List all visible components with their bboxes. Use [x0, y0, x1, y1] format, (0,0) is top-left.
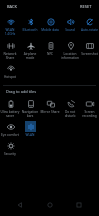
- staticText: Network Share: [0, 52, 20, 60]
- button[interactable]: Mobile data: [40, 15, 60, 33]
- staticText: recording: [80, 114, 99, 118]
- button[interactable]: Auto-rotate: [80, 15, 99, 33]
- staticText: Location: [60, 52, 80, 56]
- staticText: Screenshot: [80, 52, 99, 56]
- staticText: 1.4GHz: [0, 32, 20, 36]
- staticText: Mobile data: [40, 28, 60, 32]
- staticText: Security: [0, 152, 20, 156]
- staticText: saver: [0, 114, 20, 118]
- button[interactable]: RESET: [78, 2, 94, 11]
- staticText: Hotspot: [0, 75, 20, 79]
- button[interactable]: Mirror Share: [40, 97, 60, 115]
- button[interactable]: Navigation: [20, 97, 40, 119]
- staticText: WLAN: [0, 28, 20, 32]
- staticText: Drag to add tiles: [6, 89, 37, 94]
- staticText: bars: [20, 114, 40, 118]
- button[interactable]: BACK: [5, 2, 20, 11]
- staticText: Sound: [60, 28, 80, 32]
- button[interactable]: Hotspot: [0, 62, 20, 80]
- staticText: Mirror Share: [40, 110, 60, 114]
- staticText: Navigation: [20, 110, 40, 114]
- button[interactable]: Security: [0, 139, 20, 157]
- button[interactable]: Back: [11, 196, 29, 214]
- button[interactable]: Network Share: [0, 39, 20, 61]
- button[interactable]: WLAN: [0, 15, 20, 37]
- button[interactable]: Ultra battery: [0, 97, 20, 119]
- button[interactable]: Screenshot: [80, 39, 99, 57]
- staticText: Airplane mode: [20, 52, 40, 60]
- staticText: Bluetooth: [20, 28, 40, 32]
- button[interactable]: NFC: [40, 39, 60, 57]
- button[interactable]: Bluetooth: [20, 15, 40, 33]
- button[interactable]: Airplane mode: [20, 39, 40, 61]
- button[interactable]: Sound: [60, 15, 80, 33]
- button[interactable]: Location: [60, 39, 80, 61]
- button[interactable]: Recents: [70, 196, 88, 214]
- button[interactable]: WLAN: [20, 120, 40, 138]
- staticText: Screen: [80, 110, 99, 114]
- staticText: information: [60, 56, 80, 60]
- staticText: Auto-rotate: [80, 28, 99, 32]
- staticText: Eye comfort: [0, 133, 20, 137]
- staticText: WLAN: [20, 133, 40, 137]
- staticText: BACK: [7, 4, 18, 9]
- button[interactable]: Eye comfort: [0, 120, 20, 138]
- staticText: Ultra battery: [0, 110, 20, 114]
- staticText: RESET: [80, 4, 92, 9]
- button[interactable]: Home: [41, 196, 59, 214]
- staticText: NFC: [40, 52, 60, 56]
- staticText: Do not disturb: [60, 110, 80, 118]
- button[interactable]: Do not disturb: [60, 97, 80, 119]
- button[interactable]: Screen: [80, 97, 99, 119]
